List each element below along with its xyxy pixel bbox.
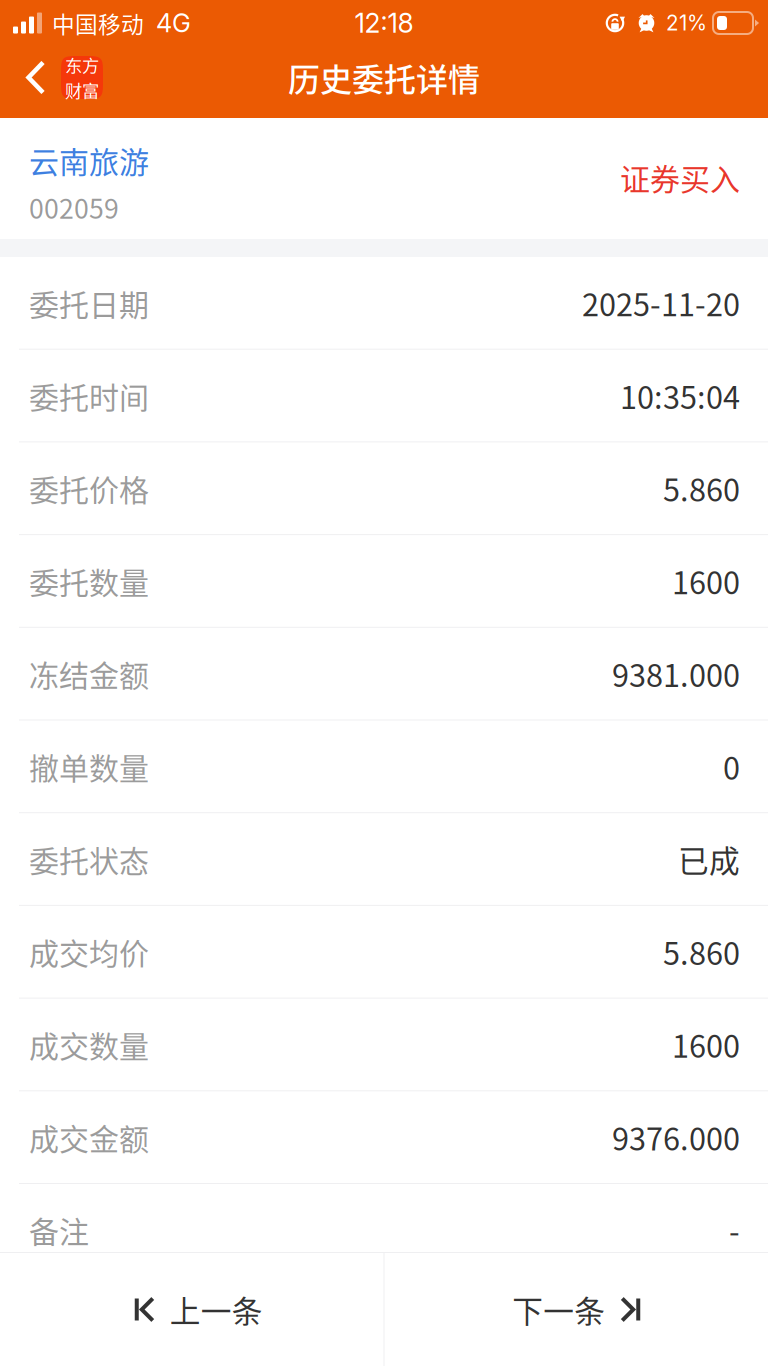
staticText: 2025-11-20 <box>582 281 740 325</box>
staticText: 12:18 <box>354 7 413 39</box>
button[interactable]: 上一条 <box>0 1253 383 1366</box>
staticText: 下一条 <box>512 1287 605 1332</box>
staticText: 东方 <box>65 52 99 77</box>
staticText: 撤单数量 <box>29 745 149 788</box>
staticText: 财富 <box>65 77 99 103</box>
staticText: 10:35:04 <box>620 373 740 418</box>
staticText: 冻结金额 <box>29 652 149 695</box>
staticText: 5.860 <box>663 466 740 510</box>
staticText: 5.860 <box>663 929 740 974</box>
staticText: - <box>729 1208 740 1252</box>
staticText: 上一条 <box>170 1287 263 1332</box>
staticText: 历史委托详情 <box>288 54 480 101</box>
staticText: 已成 <box>678 837 740 881</box>
staticText: 委托状态 <box>29 837 149 881</box>
staticText: 备注 <box>29 1208 89 1251</box>
staticText: 中国移动 <box>52 7 144 39</box>
staticText: 4G <box>156 8 191 38</box>
staticText: 21% <box>666 10 707 35</box>
staticText: 成交金额 <box>29 1115 149 1159</box>
staticText: 证券买入 <box>620 155 740 199</box>
staticText: 委托数量 <box>29 559 149 603</box>
staticText: 1600 <box>672 559 740 603</box>
staticText: 0 <box>723 744 740 788</box>
staticText: 002059 <box>29 188 119 226</box>
staticText: 委托日期 <box>29 281 149 324</box>
staticText: 成交均价 <box>29 930 149 973</box>
button[interactable]: 返回 <box>0 46 115 118</box>
button[interactable]: 下一条 <box>384 1253 768 1366</box>
staticText: 云南旅游 <box>29 138 149 182</box>
staticText: 9381.000 <box>612 651 740 696</box>
staticText: 1600 <box>672 1022 740 1067</box>
staticText: 委托时间 <box>29 374 149 417</box>
staticText: 9376.000 <box>612 1115 740 1159</box>
staticText: 成交数量 <box>29 1023 149 1066</box>
staticText: 委托价格 <box>29 466 149 510</box>
